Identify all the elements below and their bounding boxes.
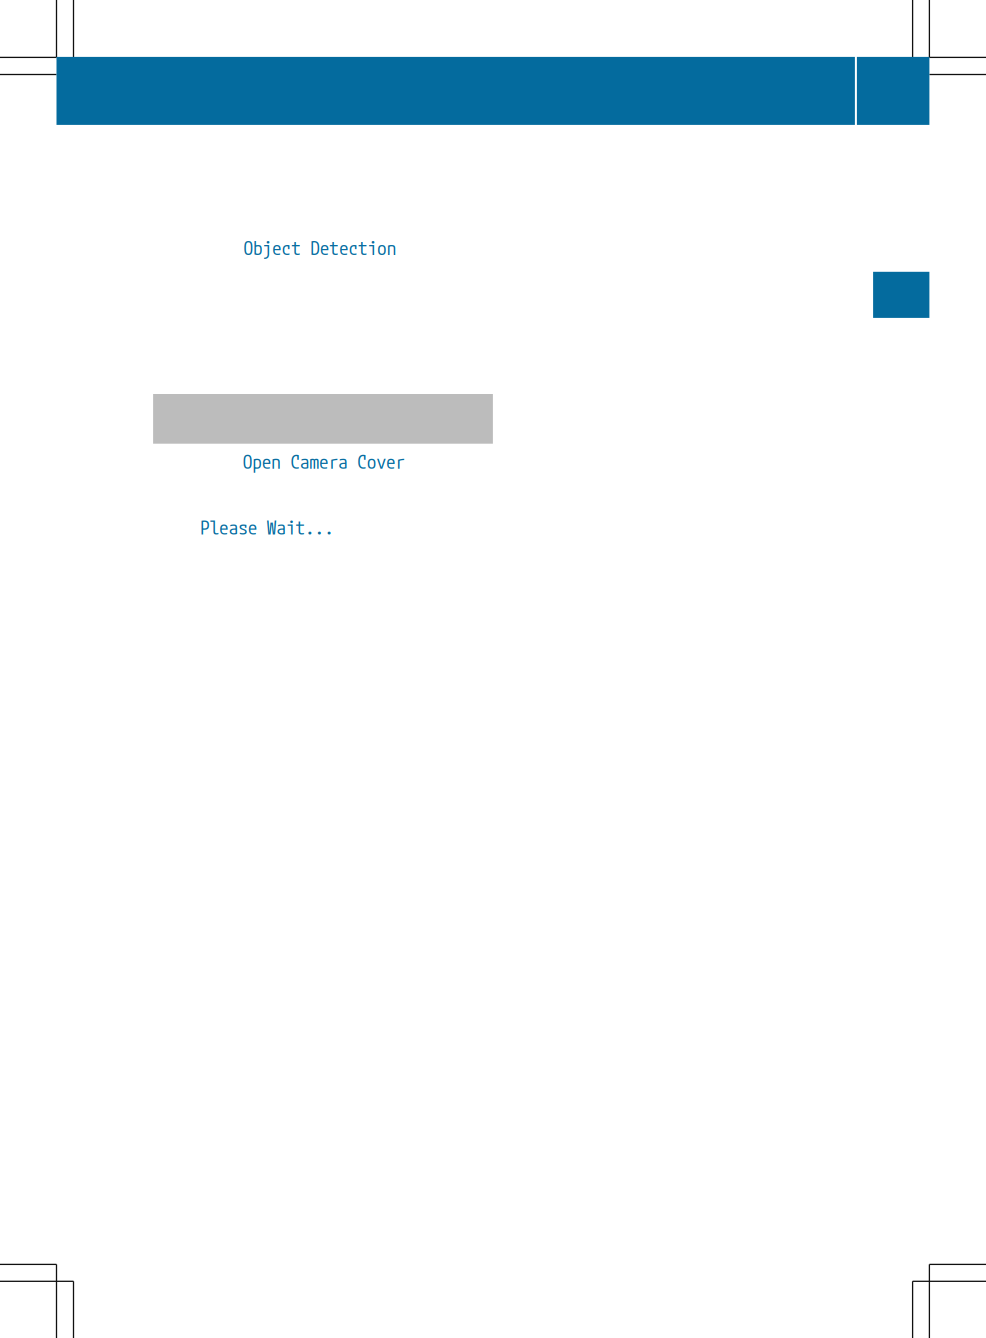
button[interactable]: Page number <box>857 57 929 125</box>
staticText: Open Camera Cover <box>243 450 405 473</box>
button[interactable]: Chapter thumb index <box>873 272 929 318</box>
button[interactable]: Section header <box>56 57 855 125</box>
staticText: Object Detection <box>243 236 397 259</box>
staticText: Please Wait... <box>200 515 334 539</box>
